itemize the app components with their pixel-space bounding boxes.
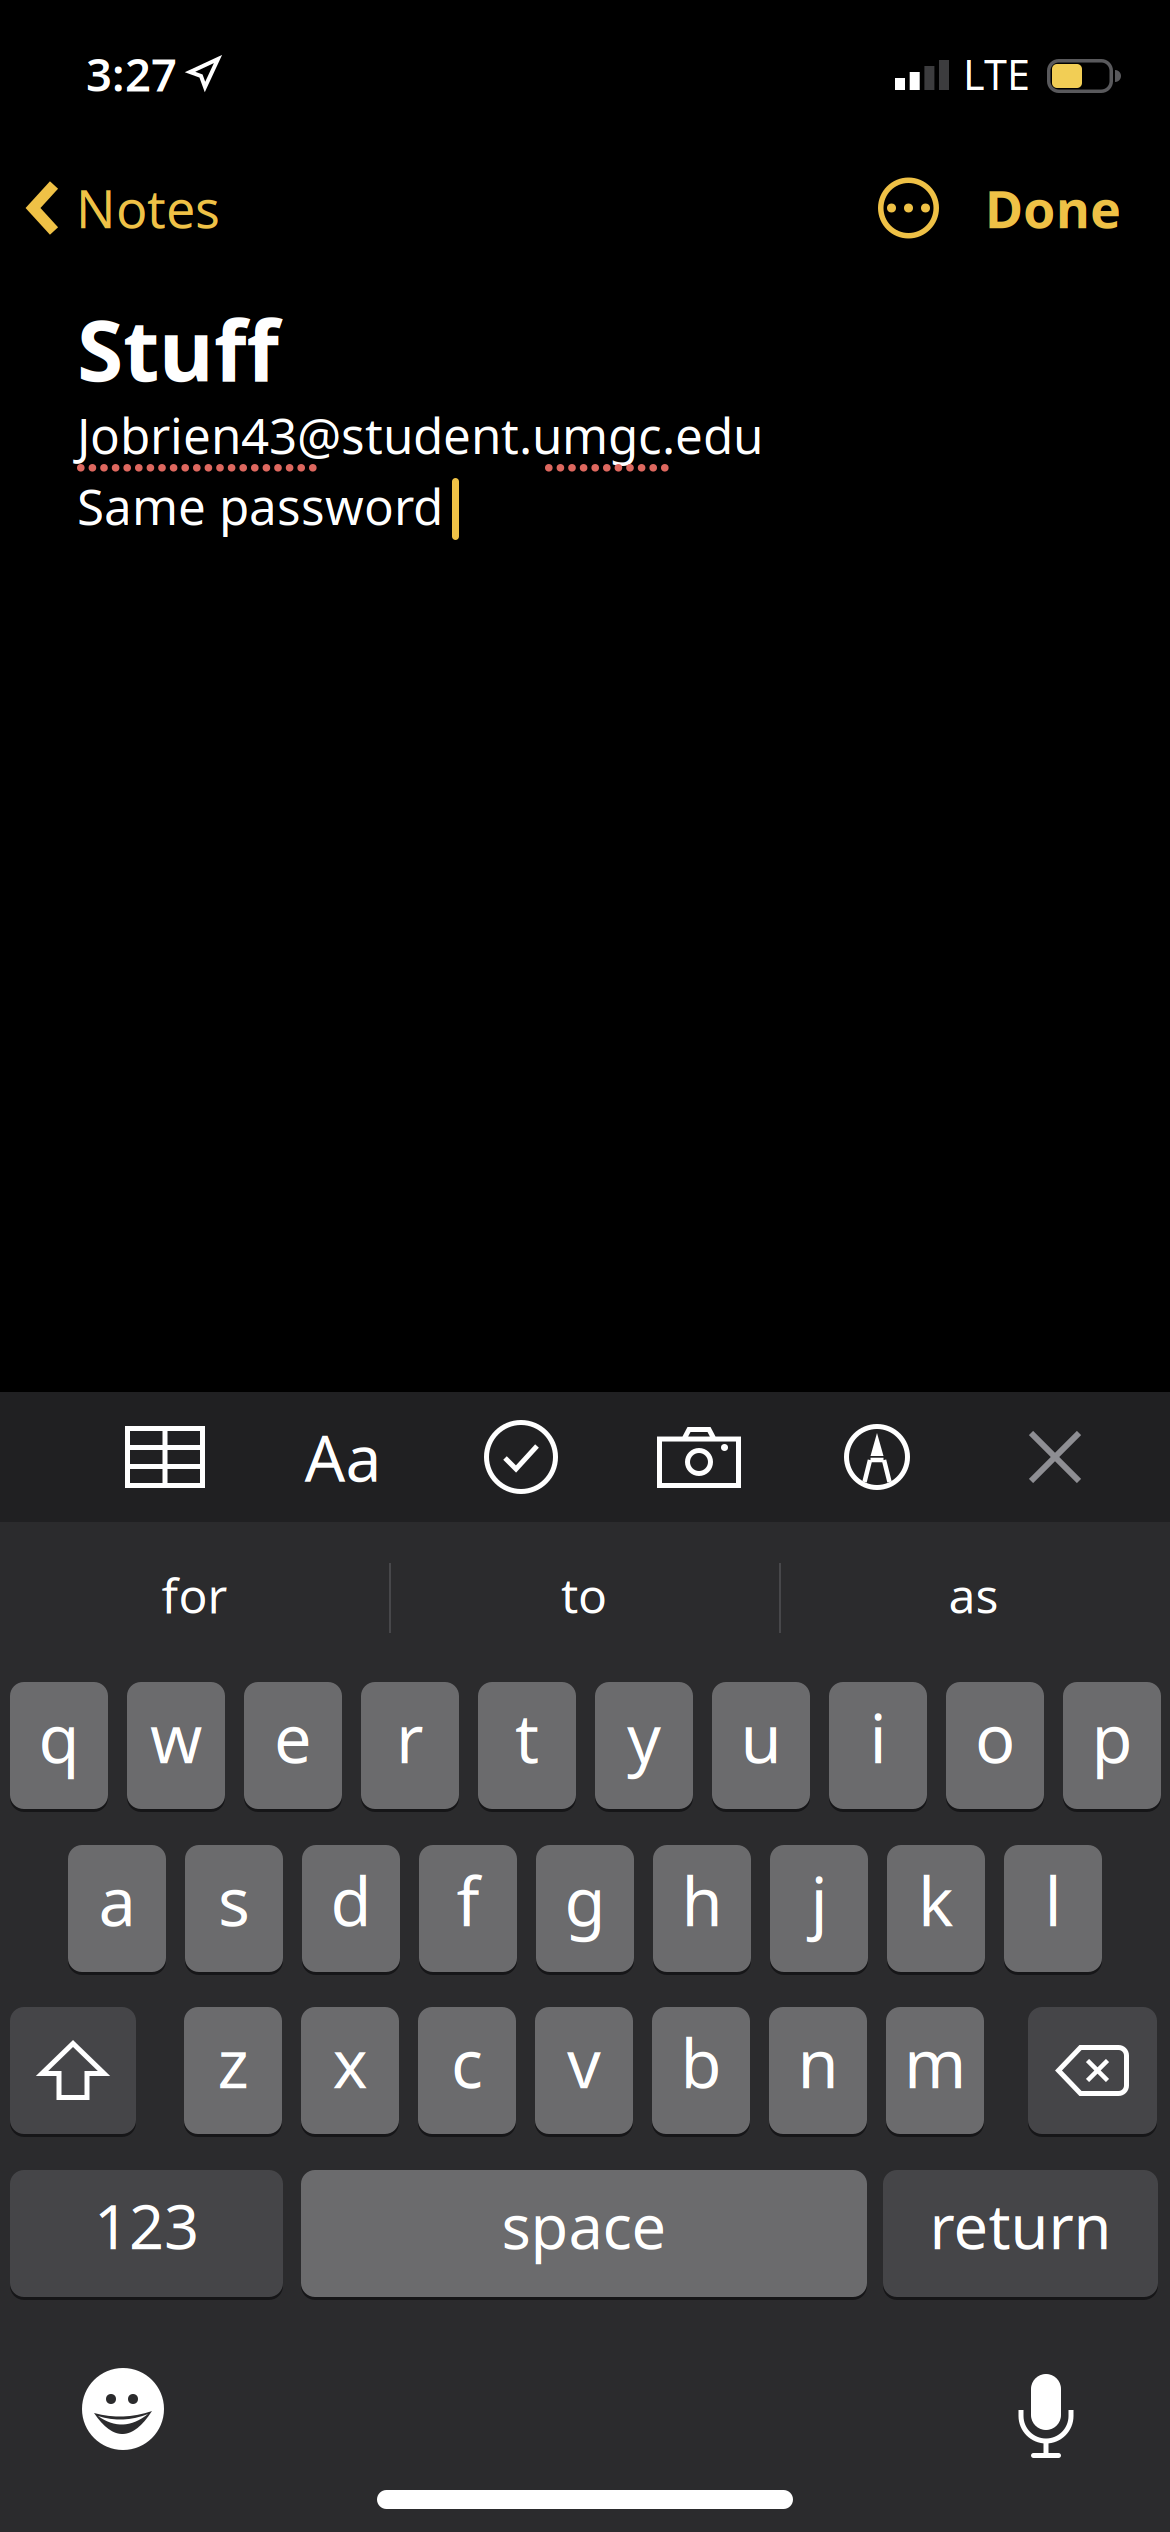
- staticText: s: [218, 1856, 250, 1945]
- button[interactable]: s: [185, 1845, 283, 1972]
- staticText: g: [564, 1856, 605, 1945]
- button[interactable]: z: [184, 2007, 282, 2134]
- button[interactable]: return: [883, 2170, 1158, 2297]
- button[interactable]: k: [887, 1845, 985, 1972]
- staticText: x: [332, 2018, 367, 2107]
- button[interactable]: Delete: [1028, 2007, 1157, 2134]
- staticText: n: [797, 2018, 838, 2107]
- staticText: m: [904, 2018, 966, 2107]
- staticText: return: [929, 2185, 1111, 2266]
- staticText: w: [150, 1693, 202, 1782]
- button[interactable]: i: [829, 1682, 927, 1809]
- button[interactable]: h: [653, 1845, 751, 1972]
- button[interactable]: e: [244, 1682, 342, 1809]
- staticText: j: [810, 1856, 827, 1945]
- staticText: u: [740, 1693, 781, 1782]
- button[interactable]: j: [770, 1845, 868, 1972]
- staticText: Jobrien43@student.umgc.edu: [77, 402, 763, 467]
- staticText: Same password: [77, 473, 443, 538]
- button[interactable]: g: [536, 1845, 634, 1972]
- button[interactable]: v: [535, 2007, 633, 2134]
- button[interactable]: Done: [939, 173, 1121, 243]
- staticText: r: [396, 1693, 424, 1782]
- staticText: to: [561, 1563, 607, 1627]
- staticText: v: [567, 2018, 601, 2107]
- button[interactable]: Markup: [788, 1392, 966, 1522]
- button[interactable]: as: [779, 1522, 1168, 1668]
- staticText: y: [627, 1693, 661, 1782]
- staticText: 123: [94, 2185, 199, 2266]
- staticText: e: [274, 1693, 312, 1782]
- button[interactable]: t: [478, 1682, 576, 1809]
- staticText: 3:27: [86, 44, 177, 104]
- button[interactable]: o: [946, 1682, 1044, 1809]
- staticText: t: [515, 1693, 539, 1782]
- staticText: q: [38, 1693, 79, 1782]
- button[interactable]: Dictation: [1018, 2365, 1074, 2453]
- button[interactable]: r: [361, 1682, 459, 1809]
- button[interactable]: More: [878, 177, 939, 238]
- button[interactable]: Emoji: [82, 2368, 164, 2450]
- staticText: i: [869, 1693, 886, 1782]
- button[interactable]: d: [302, 1845, 400, 1972]
- button[interactable]: n: [769, 2007, 867, 2134]
- staticText: k: [918, 1856, 954, 1945]
- staticText: Stuff: [77, 293, 279, 404]
- button[interactable]: Text formatting: [254, 1392, 432, 1522]
- staticText: Notes: [76, 173, 220, 243]
- staticText: space: [501, 2185, 666, 2266]
- staticText: h: [681, 1856, 722, 1945]
- button[interactable]: for: [0, 1522, 389, 1668]
- button[interactable]: x: [301, 2007, 399, 2134]
- staticText: Aa: [304, 1414, 381, 1499]
- button[interactable]: a: [68, 1845, 166, 1972]
- button[interactable]: l: [1004, 1845, 1102, 1972]
- staticText: d: [330, 1856, 371, 1945]
- button[interactable]: Insert table: [76, 1392, 254, 1522]
- button[interactable]: w: [127, 1682, 225, 1809]
- staticText: LTE: [963, 47, 1030, 101]
- staticText: for: [161, 1563, 227, 1627]
- staticText: c: [451, 2018, 483, 2107]
- staticText: p: [1091, 1693, 1132, 1782]
- button[interactable]: Shift: [10, 2007, 136, 2134]
- staticText: l: [1044, 1856, 1061, 1945]
- button[interactable]: Camera: [610, 1392, 788, 1522]
- button[interactable]: f: [419, 1845, 517, 1972]
- button[interactable]: to: [389, 1522, 779, 1668]
- staticText: z: [217, 2018, 248, 2107]
- staticText: b: [680, 2018, 721, 2107]
- button[interactable]: Notes: [26, 173, 220, 243]
- button[interactable]: b: [652, 2007, 750, 2134]
- button[interactable]: space: [301, 2170, 867, 2297]
- button[interactable]: 123: [10, 2170, 283, 2297]
- button[interactable]: y: [595, 1682, 693, 1809]
- staticText: as: [948, 1563, 998, 1627]
- button[interactable]: u: [712, 1682, 810, 1809]
- button[interactable]: q: [10, 1682, 108, 1809]
- button[interactable]: m: [886, 2007, 984, 2134]
- staticText: f: [456, 1856, 479, 1945]
- staticText: o: [975, 1693, 1015, 1782]
- button[interactable]: p: [1063, 1682, 1161, 1809]
- staticText: a: [98, 1856, 135, 1945]
- button[interactable]: Checklist: [432, 1392, 610, 1522]
- button[interactable]: c: [418, 2007, 516, 2134]
- button[interactable]: Dismiss keyboard: [966, 1392, 1144, 1522]
- staticText: Done: [985, 173, 1121, 243]
